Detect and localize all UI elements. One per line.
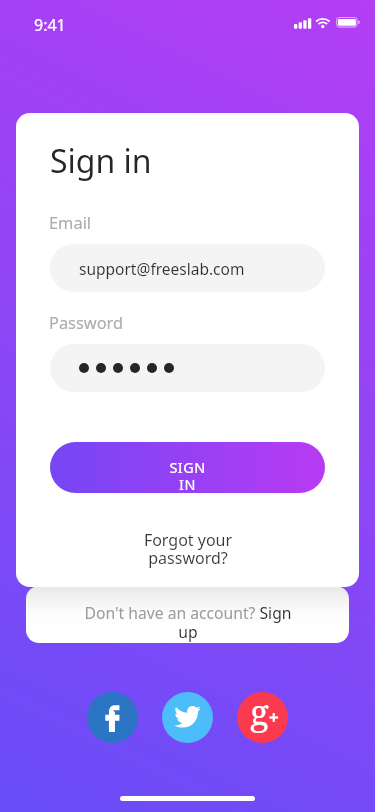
staticText: SIGN IN	[168, 458, 207, 493]
staticText: support@freeslab.com	[79, 258, 245, 279]
button[interactable]: Sign in with Google Plus	[237, 692, 288, 743]
button[interactable]: Sign in with Facebook	[87, 692, 138, 743]
button[interactable]	[50, 344, 325, 392]
staticText: Forgot your password?	[140, 529, 236, 569]
staticText: Don't have an account? Sign up	[81, 602, 295, 643]
button[interactable]: support@freeslab.com	[50, 244, 325, 292]
button[interactable]: SIGN IN	[50, 442, 325, 493]
staticText: g	[250, 692, 269, 736]
staticText: Email	[49, 211, 92, 233]
staticText: Password	[49, 311, 124, 333]
button[interactable]: Forgot your password?	[140, 529, 236, 569]
button[interactable]: Don't have an account? Sign up	[26, 586, 349, 643]
staticText: Sign in	[50, 139, 152, 183]
button[interactable]: Sign in with Twitter	[162, 692, 213, 743]
staticText: 9:41	[34, 14, 66, 36]
